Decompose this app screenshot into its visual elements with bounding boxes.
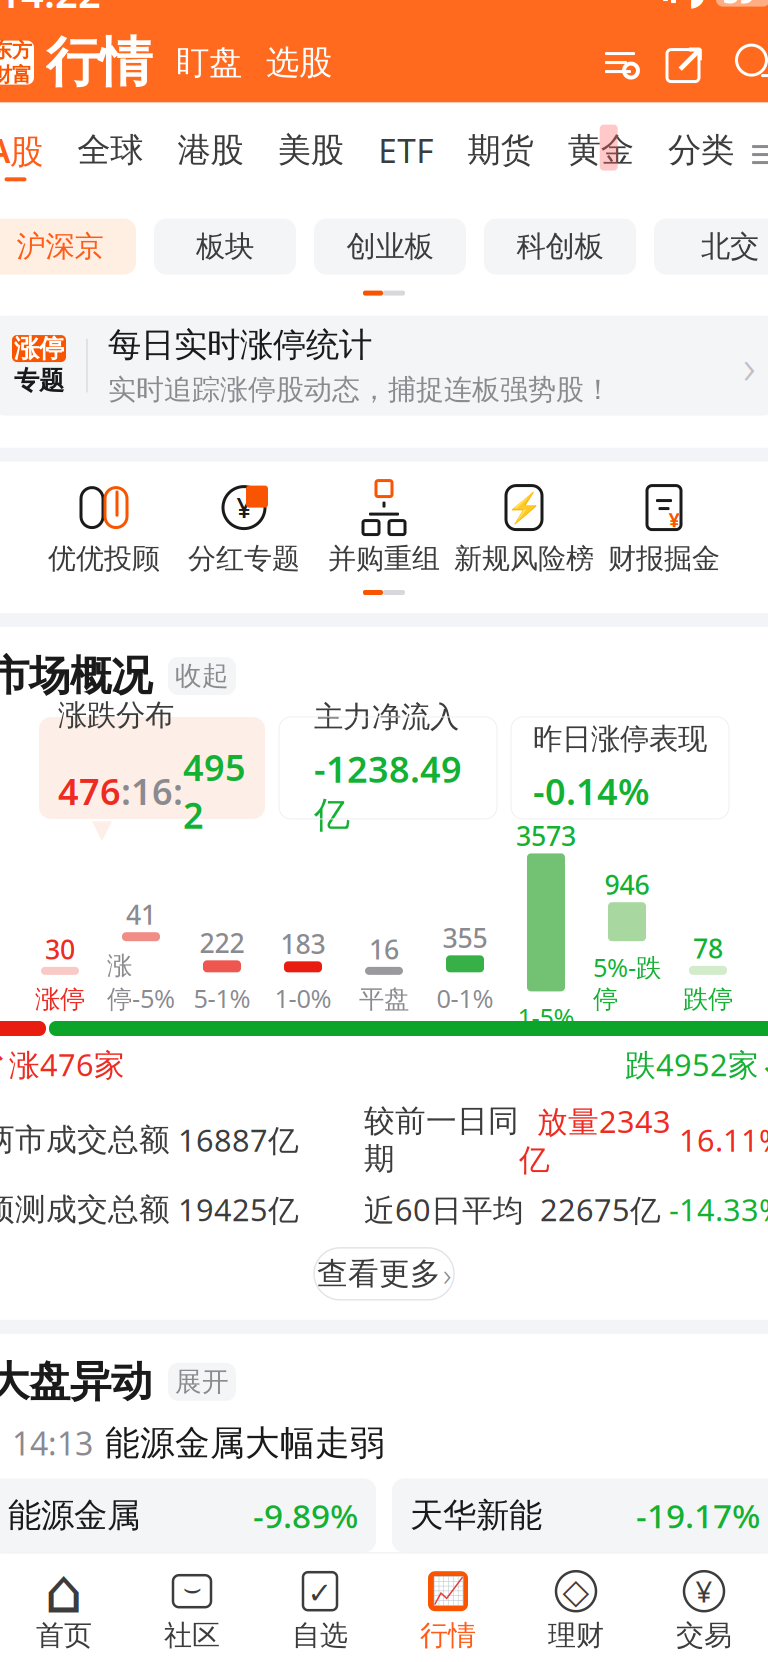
- staticText: ›: [443, 1253, 451, 1295]
- staticText: 5%-跌停: [593, 950, 661, 1015]
- staticText: 盯盘: [176, 42, 242, 83]
- button[interactable]: 港股: [174, 130, 248, 179]
- button[interactable]: 黄金: [564, 130, 638, 179]
- staticText: 16: [369, 931, 399, 967]
- staticText: 946: [604, 867, 649, 902]
- staticText: 涨停-5%: [107, 950, 175, 1015]
- button[interactable]: ⚡: [454, 484, 594, 576]
- staticText: 能源金属: [8, 1495, 140, 1536]
- staticText: 创业板: [346, 229, 433, 265]
- staticText: 大盘异动: [0, 1356, 152, 1407]
- staticText: 展开: [175, 1365, 229, 1398]
- staticText: 社区: [164, 1618, 220, 1653]
- staticText: 16: [131, 767, 173, 815]
- button[interactable]: 板块: [154, 219, 296, 275]
- button[interactable]: 大盘异动: [0, 1346, 768, 1418]
- staticText: 行情: [420, 1618, 476, 1653]
- staticText: 78: [693, 930, 723, 966]
- staticText: 北交: [701, 229, 759, 265]
- button[interactable]: A股: [0, 128, 47, 181]
- button[interactable]: 主力净流入: [279, 717, 497, 819]
- button[interactable]: 优优投顾: [34, 484, 174, 576]
- staticText: 跌4952家: [625, 1044, 759, 1085]
- staticText: 实时追踪涨停股动态，捕捉连板强势股！: [108, 372, 612, 407]
- button[interactable]: 搜索: [710, 39, 768, 87]
- staticText: 0-1%: [436, 981, 493, 1015]
- button[interactable]: ◇: [512, 1570, 640, 1653]
- staticText: 近60日平均: [364, 1189, 524, 1230]
- staticText: 涨跌分布: [58, 697, 174, 733]
- button[interactable]: 分享: [644, 39, 710, 87]
- button[interactable]: 全球: [73, 130, 147, 179]
- button[interactable]: 全部分类: [738, 135, 768, 175]
- button[interactable]: 北交: [654, 219, 768, 275]
- staticText: -9.89%: [253, 1493, 358, 1538]
- staticText: 收起: [175, 660, 229, 692]
- staticText: 22675亿: [524, 1189, 661, 1230]
- button[interactable]: 沪深京: [0, 219, 136, 275]
- staticText: 4952: [183, 743, 246, 839]
- staticText: 沪深京: [16, 229, 103, 265]
- staticText: 19425亿: [170, 1189, 299, 1230]
- staticText: -0.14%: [533, 767, 650, 815]
- staticText: ¥: [695, 1572, 712, 1611]
- button[interactable]: ✓: [256, 1570, 384, 1653]
- staticText: 交易: [676, 1618, 732, 1653]
- staticText: ›: [743, 334, 756, 397]
- button[interactable]: 📈: [384, 1570, 512, 1653]
- button[interactable]: ⌂: [0, 1570, 128, 1653]
- staticText: 平盘: [359, 984, 409, 1015]
- staticText: ¥: [668, 506, 679, 533]
- staticText: 市场概况: [0, 651, 152, 701]
- staticText: 行情: [46, 30, 152, 95]
- button[interactable]: ¥: [594, 484, 734, 576]
- button[interactable]: 天华新能: [392, 1478, 768, 1552]
- staticText: 每日实时涨停统计: [108, 324, 372, 365]
- staticText: 财报掘金: [608, 542, 720, 576]
- button[interactable]: ⌣: [128, 1570, 256, 1653]
- staticText: 东方 财富: [0, 38, 32, 87]
- button[interactable]: 创业板: [314, 219, 466, 275]
- staticText: :: [173, 767, 183, 815]
- staticText: ↑: [0, 1048, 9, 1081]
- staticText: -19.17%: [636, 1493, 760, 1538]
- button[interactable]: 查看更多: [314, 1248, 454, 1300]
- button[interactable]: 并购重组: [314, 484, 454, 576]
- staticText: 科创板: [516, 229, 603, 265]
- staticText: 3573: [516, 818, 576, 853]
- button[interactable]: 涨跌分布: [39, 717, 265, 819]
- staticText: 222: [199, 925, 244, 960]
- staticText: 专题: [14, 365, 64, 396]
- staticText: 涨476家: [9, 1044, 125, 1085]
- staticText: 并购重组: [328, 542, 440, 576]
- button[interactable]: ¥: [640, 1570, 768, 1653]
- staticText: ↗: [673, 37, 707, 82]
- button[interactable]: 能源金属: [0, 1478, 376, 1552]
- staticText: 放量2343亿: [519, 1101, 671, 1179]
- button[interactable]: 科创板: [484, 219, 636, 275]
- staticText: 📈: [431, 1576, 464, 1606]
- staticText: ETF: [378, 128, 433, 172]
- staticText: 1-5%: [517, 1000, 574, 1034]
- staticText: ¥: [236, 490, 251, 525]
- staticText: 全球: [77, 130, 143, 170]
- staticText: 30: [45, 931, 75, 967]
- button[interactable]: 昨日涨停表现: [511, 717, 729, 819]
- button[interactable]: 市场概况: [0, 641, 768, 711]
- button[interactable]: ETF: [374, 128, 437, 181]
- button[interactable]: 选股: [242, 42, 332, 83]
- button[interactable]: 期货: [463, 130, 537, 179]
- staticText: 涨停: [14, 333, 64, 364]
- button[interactable]: 盯盘: [152, 42, 242, 83]
- staticText: -14.33%: [661, 1189, 768, 1230]
- staticText: 昨日涨停表现: [533, 721, 707, 757]
- button[interactable]: 美股: [274, 130, 348, 179]
- button[interactable]: ¥: [174, 484, 314, 576]
- staticText: A股: [0, 128, 43, 172]
- button[interactable]: 分类: [664, 130, 738, 179]
- staticText: 优优投顾: [48, 542, 160, 576]
- staticText: ⌂: [44, 1556, 83, 1626]
- button[interactable]: 筛选设置: [596, 41, 644, 85]
- staticText: 天华新能: [410, 1495, 542, 1536]
- button[interactable]: 涨停: [0, 316, 768, 416]
